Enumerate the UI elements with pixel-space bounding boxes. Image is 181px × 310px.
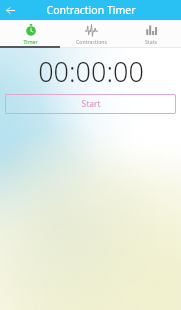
button[interactable]: Stats	[121, 20, 181, 48]
button[interactable]: Start	[5, 94, 176, 114]
button[interactable]: Back	[0, 0, 20, 20]
staticText: Stats	[145, 38, 157, 45]
button[interactable]: Timer	[0, 20, 61, 48]
staticText: Contraction Timer	[46, 3, 136, 17]
staticText: Timer	[23, 38, 38, 45]
staticText: 00:00:00	[38, 53, 144, 90]
staticText: Start	[81, 98, 101, 110]
button[interactable]: Contractions	[61, 20, 121, 48]
staticText: Contractions	[76, 38, 107, 45]
